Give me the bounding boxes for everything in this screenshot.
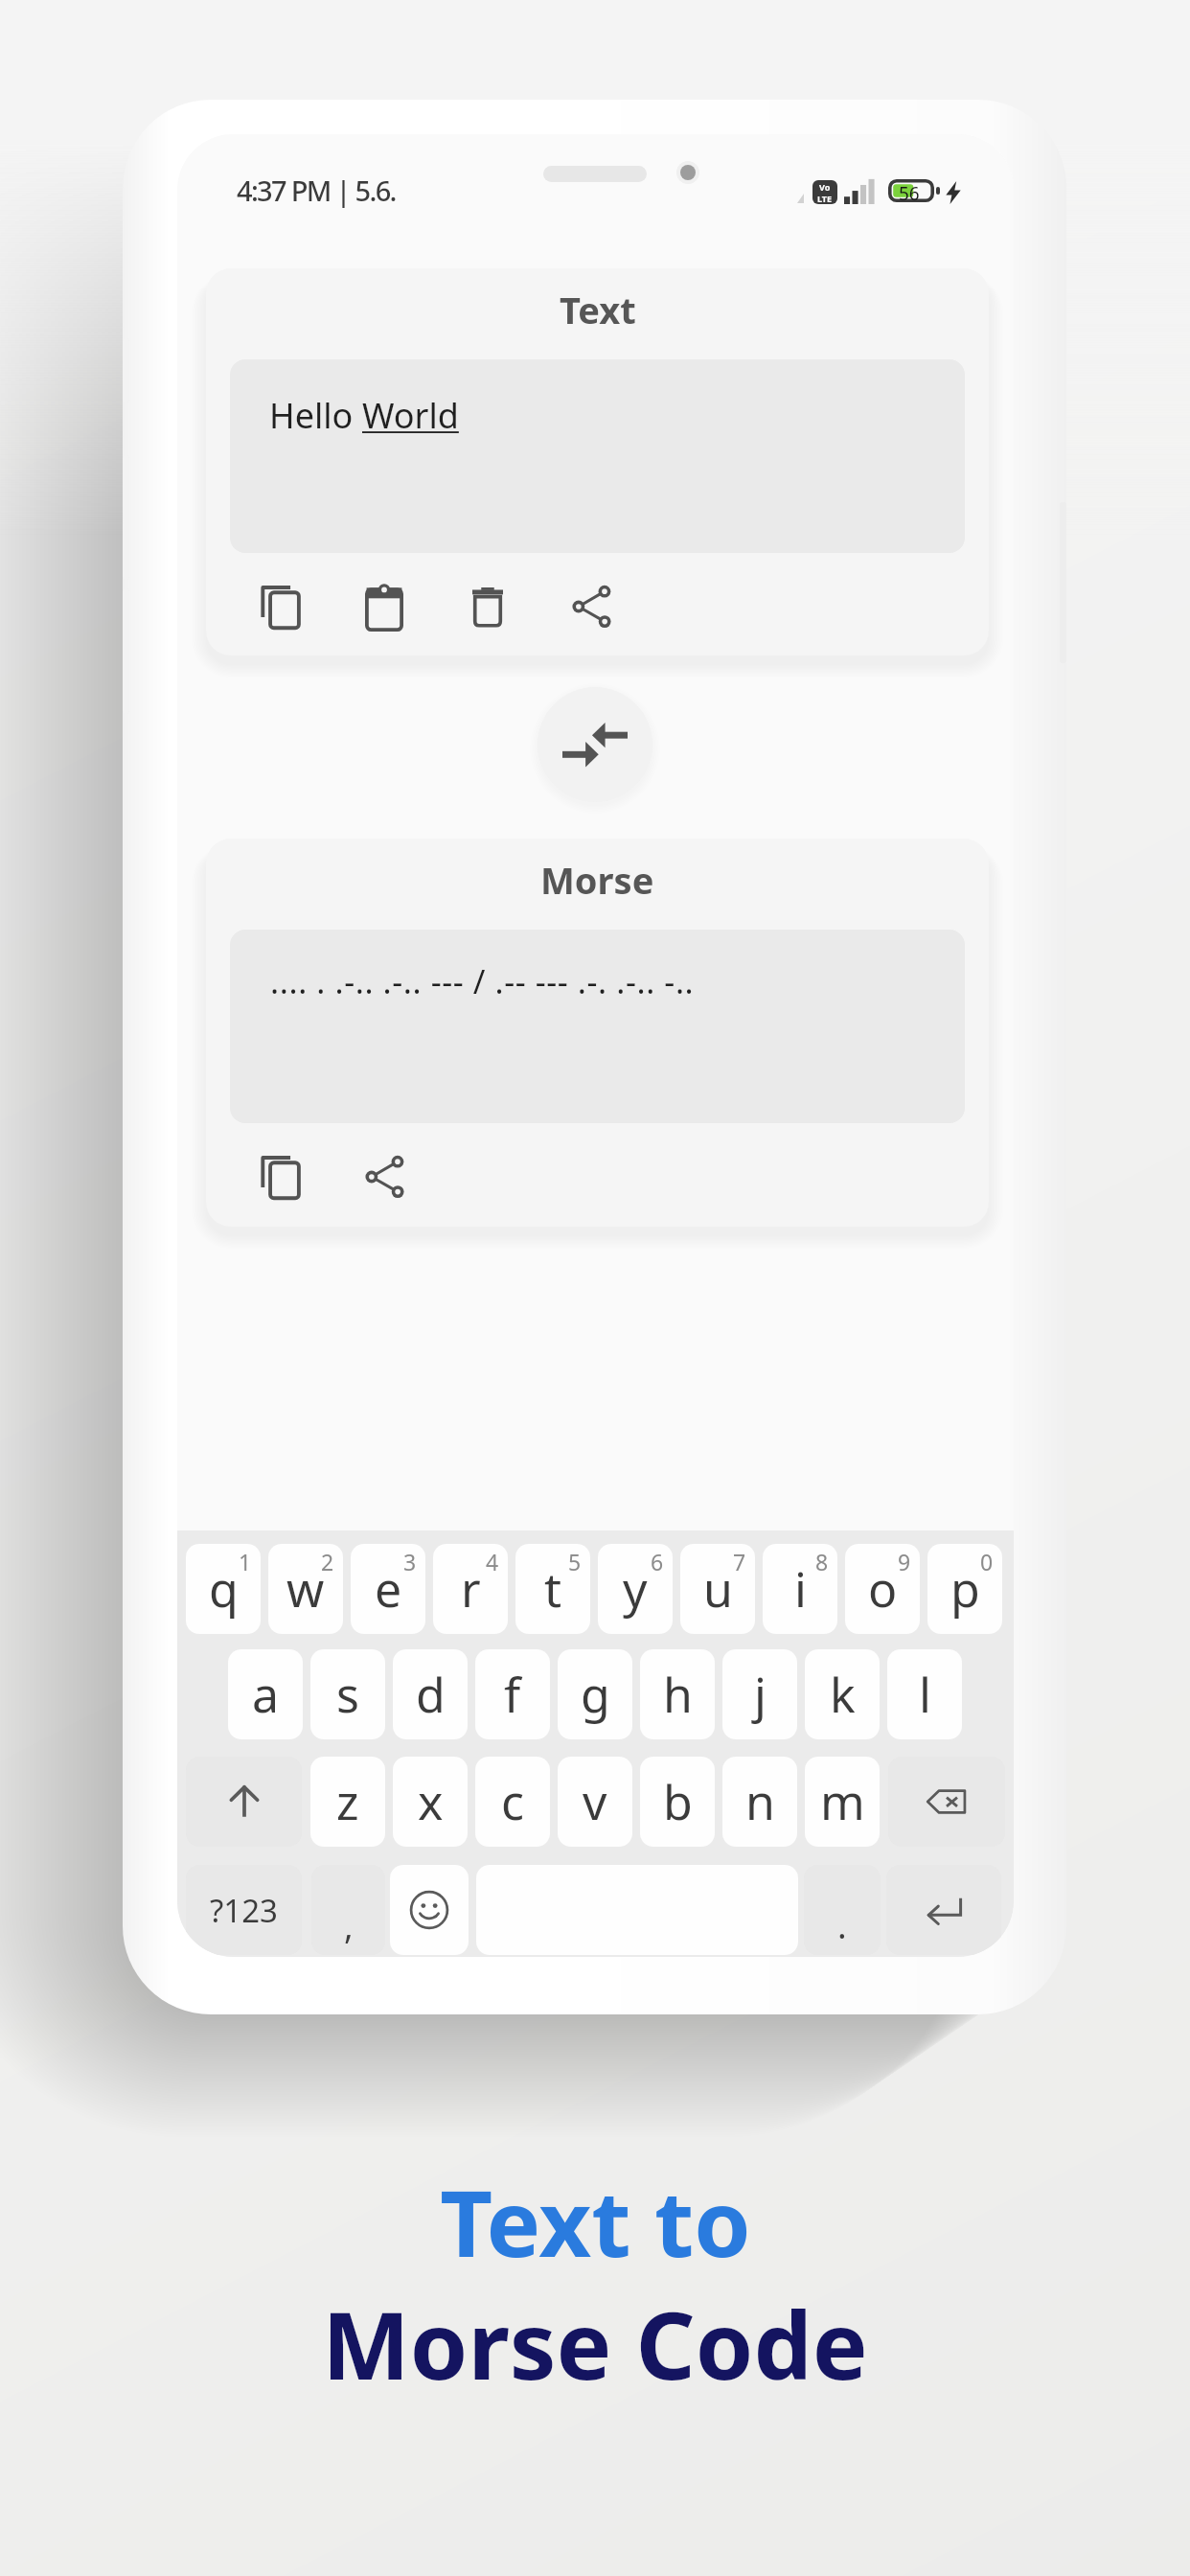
staticText: 6 [651, 1547, 664, 1576]
button[interactable]: r [433, 1544, 508, 1634]
staticText: , [344, 1902, 354, 1949]
button[interactable]: u [680, 1544, 755, 1634]
staticText: 9 [898, 1547, 911, 1576]
button[interactable]: i [763, 1544, 837, 1634]
staticText: c [501, 1769, 524, 1834]
staticText: k [830, 1662, 856, 1727]
staticText: 7 [733, 1547, 746, 1576]
staticText: b [663, 1769, 693, 1834]
button[interactable]: Copy [229, 1147, 332, 1207]
button[interactable]: b [640, 1757, 715, 1847]
button[interactable]: . [804, 1865, 881, 1955]
button[interactable]: Share [539, 577, 643, 636]
button[interactable]: Delete [436, 577, 539, 636]
staticText: Text [560, 285, 636, 334]
staticText: x [418, 1769, 444, 1834]
staticText: 2 [321, 1547, 334, 1576]
staticText: s [336, 1662, 359, 1727]
staticText: j [754, 1662, 767, 1727]
staticText: 0 [980, 1547, 994, 1576]
staticText: m [820, 1769, 865, 1834]
staticText: World [362, 392, 459, 439]
staticText: g [581, 1662, 610, 1727]
button[interactable]: Swap text and morse [538, 687, 652, 802]
staticText: .... . .-.. .-.. --- / .-- --- .-. .-.. … [270, 959, 695, 1003]
staticText: u [703, 1556, 733, 1621]
staticText: . [837, 1902, 847, 1949]
button[interactable]: Paste [332, 577, 436, 636]
staticText: z [336, 1769, 359, 1834]
staticText: Vo [819, 181, 831, 193]
staticText: d [416, 1662, 446, 1727]
staticText: r [461, 1556, 481, 1621]
staticText: v [583, 1769, 607, 1834]
staticText: w [286, 1556, 325, 1621]
button[interactable] [886, 1865, 1001, 1955]
button[interactable]: ?123 [186, 1865, 302, 1955]
staticText: y [623, 1556, 648, 1621]
button[interactable]: c [475, 1757, 550, 1847]
button[interactable]: g [558, 1649, 632, 1739]
staticText: q [209, 1556, 239, 1621]
staticText: 4 [486, 1547, 499, 1576]
button[interactable]: e [351, 1544, 425, 1634]
staticText: 1 [239, 1547, 252, 1576]
staticText: t [544, 1556, 562, 1621]
button[interactable]: d [393, 1649, 468, 1739]
staticText: p [950, 1556, 980, 1621]
button[interactable]: q [186, 1544, 261, 1634]
staticText: o [868, 1556, 898, 1621]
staticText: Text to [440, 2159, 751, 2283]
staticText: ?123 [210, 1889, 278, 1932]
button[interactable] [390, 1865, 469, 1955]
button[interactable]: v [558, 1757, 632, 1847]
button[interactable]: l [887, 1649, 962, 1739]
button[interactable]: h [640, 1649, 715, 1739]
button[interactable]: Copy [229, 577, 332, 636]
staticText: Morse Code [322, 2280, 868, 2406]
staticText: 3 [403, 1547, 417, 1576]
staticText: 4:37 PM | 5.6. [237, 172, 396, 209]
button[interactable]: , [311, 1865, 385, 1955]
staticText: h [663, 1662, 693, 1727]
staticText: Hello [269, 392, 362, 439]
button[interactable]: p [927, 1544, 1002, 1634]
button[interactable]: t [515, 1544, 590, 1634]
staticText: 5 [568, 1547, 582, 1576]
button[interactable]: o [845, 1544, 920, 1634]
button[interactable]: j [722, 1649, 797, 1739]
button[interactable] [888, 1757, 1005, 1847]
button[interactable]: m [805, 1757, 880, 1847]
staticText: a [252, 1662, 280, 1727]
staticText: e [375, 1556, 402, 1621]
staticText: f [504, 1662, 521, 1727]
staticText: l [919, 1662, 931, 1727]
staticText: Morse [540, 855, 654, 905]
button[interactable]: z [310, 1757, 385, 1847]
button[interactable]: k [805, 1649, 880, 1739]
button[interactable]: s [310, 1649, 385, 1739]
staticText: i [794, 1556, 807, 1621]
button[interactable]: n [722, 1757, 797, 1847]
staticText: LTE [817, 193, 833, 204]
staticText: 56 [899, 181, 920, 204]
staticText: 8 [815, 1547, 829, 1576]
button[interactable]: x [393, 1757, 468, 1847]
button[interactable]: a [228, 1649, 303, 1739]
staticText: n [745, 1769, 775, 1834]
button[interactable]: y [598, 1544, 673, 1634]
button[interactable]: Share [332, 1147, 436, 1207]
button[interactable]: w [268, 1544, 343, 1634]
button[interactable] [186, 1757, 302, 1847]
button[interactable]: f [475, 1649, 550, 1739]
